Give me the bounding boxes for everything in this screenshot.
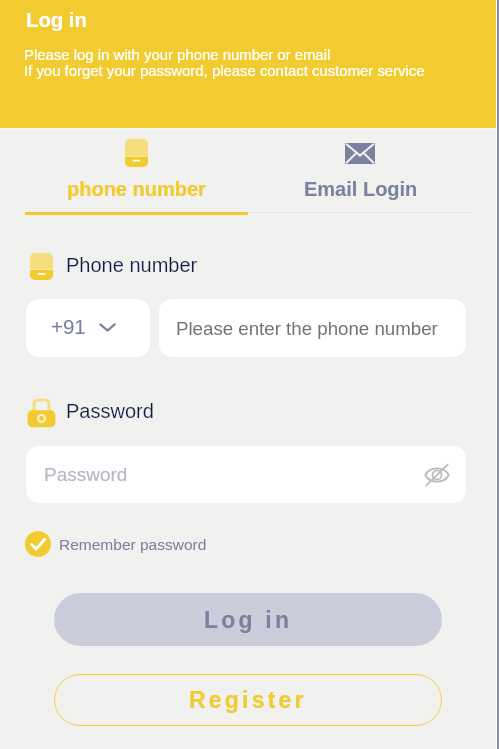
staticText: Please log in with your phone number or … [24, 47, 331, 64]
staticText: If you forget your password, please cont… [24, 63, 425, 80]
button[interactable]: Please enter the phone number [159, 299, 466, 357]
button[interactable]: Log in [54, 593, 442, 646]
button[interactable]: Register [54, 674, 442, 726]
staticText: Password [66, 400, 154, 422]
staticText: Email Login [304, 178, 418, 200]
button[interactable]: Remember password [25, 531, 207, 557]
staticText: Log in [204, 607, 293, 633]
staticText: Remember password [59, 536, 207, 553]
staticText: Log in [26, 9, 87, 32]
button[interactable]: Email Login [249, 128, 499, 215]
button[interactable]: +91 [26, 299, 150, 357]
staticText: phone number [67, 178, 206, 200]
staticText: Phone number [66, 254, 198, 276]
staticText: Register [189, 687, 307, 713]
staticText: Please enter the phone number [176, 318, 438, 339]
staticText: Password [44, 464, 128, 485]
staticText: +91 [51, 315, 86, 338]
button[interactable]: Show password [424, 462, 450, 488]
button[interactable]: phone number [0, 128, 249, 215]
button[interactable]: Password [26, 446, 466, 503]
